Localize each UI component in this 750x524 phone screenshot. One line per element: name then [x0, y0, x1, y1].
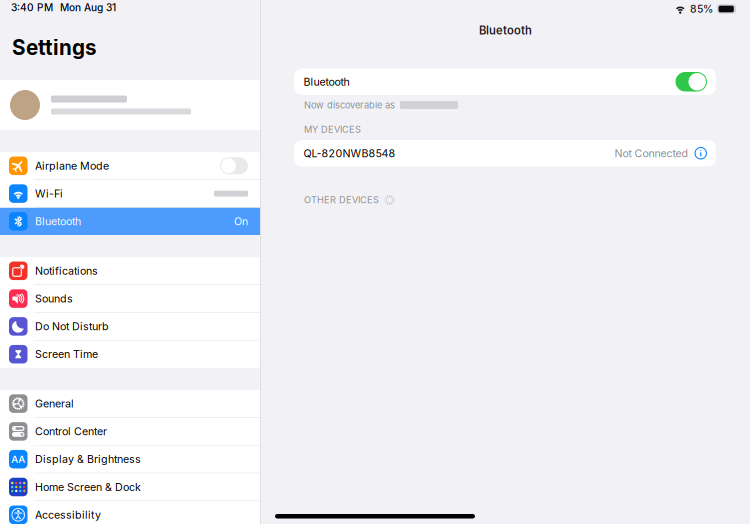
button[interactable]: Bluetooth: [0, 208, 260, 235]
staticText: On: [234, 215, 248, 228]
staticText: Bluetooth: [35, 215, 81, 228]
button[interactable]: General: [0, 390, 260, 417]
staticText: Screen Time: [35, 348, 98, 361]
staticText: Accessibility: [35, 508, 101, 521]
staticText: Bluetooth: [303, 75, 349, 88]
staticText: Do Not Disturb: [35, 320, 109, 333]
staticText: Display & Brightness: [35, 453, 141, 466]
button[interactable]: Bluetooth: [675, 72, 707, 91]
staticText: 3:40 PM: [11, 1, 53, 14]
staticText: AA: [11, 453, 25, 465]
button[interactable]: Sounds: [0, 285, 260, 312]
button[interactable]: Do Not Disturb: [0, 313, 260, 340]
staticText: Now discoverable as: [304, 99, 395, 111]
staticText: Sounds: [35, 292, 73, 305]
staticText: Settings: [12, 35, 97, 60]
staticText: Wi-Fi: [35, 187, 63, 200]
staticText: OTHER DEVICES: [304, 194, 379, 205]
staticText: General: [35, 397, 74, 410]
button[interactable]: Notifications: [0, 257, 260, 284]
button[interactable]: QL-820NWB8548: [294, 140, 716, 166]
staticText: Not Connected: [614, 147, 688, 160]
staticText: Airplane Mode: [35, 159, 109, 172]
staticText: MY DEVICES: [304, 124, 361, 135]
staticText: Home Screen & Dock: [35, 480, 141, 493]
button[interactable]: AA: [0, 446, 260, 473]
button[interactable]: Airplane Mode: [0, 152, 260, 179]
staticText: Control Center: [35, 425, 107, 438]
button[interactable]: Screen Time: [0, 341, 260, 368]
button[interactable]: [0, 80, 260, 130]
staticText: QL-820NWB8548: [303, 147, 395, 160]
staticText: 85%: [690, 3, 713, 15]
staticText: Bluetooth: [479, 24, 532, 37]
button[interactable]: Home Screen & Dock: [0, 473, 260, 501]
button[interactable]: Control Center: [0, 418, 260, 445]
staticText: Notifications: [35, 264, 98, 277]
button[interactable]: Accessibility: [0, 501, 260, 524]
button[interactable]: Wi-Fi: [0, 180, 260, 207]
staticText: Mon Aug 31: [60, 1, 116, 14]
